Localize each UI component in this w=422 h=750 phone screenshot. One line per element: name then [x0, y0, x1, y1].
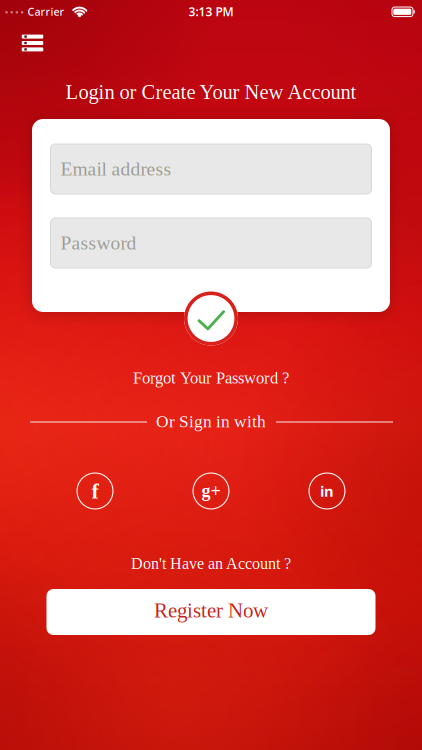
staticText: Don't Have an Account ? [131, 555, 291, 572]
staticText: Carrier [27, 4, 64, 19]
staticText: f [91, 479, 98, 503]
staticText: 3:13 PM [188, 3, 233, 19]
button[interactable]: Sign in with LinkedIn [308, 472, 345, 509]
staticText: Password [60, 232, 136, 254]
textField[interactable]: Email address [60, 158, 365, 180]
staticText: Or Sign in with [156, 412, 266, 431]
button[interactable]: Forgot Your Password ? [133, 369, 289, 387]
button[interactable]: Sign in with Google [192, 472, 229, 509]
staticText: Login or Create Your New Account [65, 81, 356, 103]
staticText: in [320, 481, 334, 501]
staticText: Email address [60, 158, 171, 180]
staticText: Register Now [154, 599, 268, 622]
button[interactable]: Register Now [46, 589, 375, 635]
button[interactable]: Sign in with Facebook [76, 472, 113, 509]
button[interactable]: Menu [18, 31, 46, 55]
button[interactable]: Log in [184, 291, 238, 345]
staticText: Forgot Your Password ? [133, 369, 289, 387]
secureTextField[interactable]: Password [60, 232, 365, 254]
staticText: g+ [201, 481, 220, 501]
